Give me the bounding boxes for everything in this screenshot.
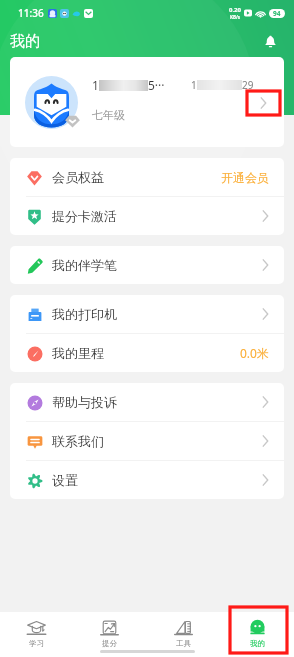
staticText: 提分卡激活 [52,208,117,224]
staticText: 1 [191,78,197,92]
staticText: 我的 [10,32,40,51]
button[interactable]: 联系我们 [10,422,284,460]
staticText: 我的 [250,639,265,648]
staticText: 1 [92,77,99,93]
button[interactable]: Notifications [260,31,280,51]
button[interactable]: 帮助与投诉 [10,383,284,421]
button[interactable]: 设置 [10,461,284,499]
staticText: 94 [273,9,281,18]
button[interactable]: 工具 [146,612,220,648]
staticText: 学习 [29,639,44,648]
staticText: 我的里程 [52,345,104,361]
staticText: 11:36 [18,6,44,20]
staticText: 0.20 [229,6,241,14]
staticText: 七年级 [92,108,125,122]
staticText: 设置 [52,472,78,488]
staticText: 0.0米 [240,345,269,361]
button[interactable]: 我的 [220,612,294,648]
staticText: 5··· [148,77,165,93]
staticText: 29 [242,78,254,92]
button[interactable]: 会员权益 [10,158,284,196]
staticText: 会员权益 [52,169,104,185]
button[interactable]: 我的伴学笔 [10,246,284,284]
staticText: 工具 [176,639,191,648]
staticText: KB/s [230,14,241,20]
staticText: 我的打印机 [52,306,117,322]
button[interactable]: 我的打印机 [10,295,284,333]
staticText: 我的伴学笔 [52,257,117,273]
button[interactable]: 我的里程 [10,334,284,372]
button[interactable]: 学习 [0,612,73,648]
staticText: 帮助与投诉 [52,394,117,410]
button[interactable]: 提分 [73,612,146,648]
button[interactable]: 1 [10,57,284,147]
staticText: 联系我们 [52,433,104,449]
staticText: 提分 [102,639,117,648]
button[interactable]: 提分卡激活 [10,197,284,235]
staticText: 开通会员 [221,170,269,185]
